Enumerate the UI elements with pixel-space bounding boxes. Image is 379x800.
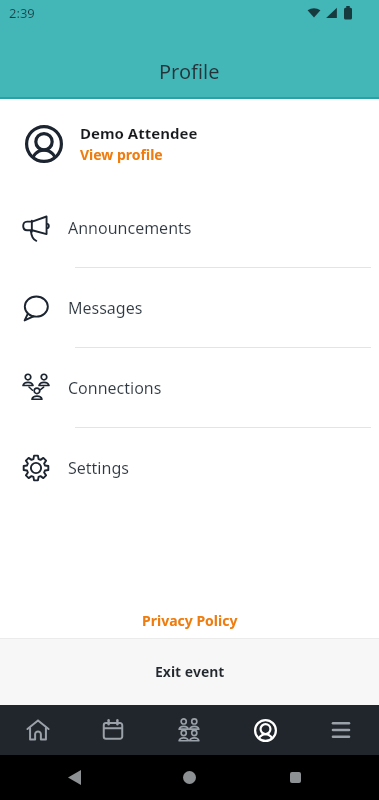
button[interactable]: [0, 705, 75, 755]
button[interactable]: [75, 705, 151, 755]
staticText: Connections: [68, 377, 162, 399]
staticText: 2:39: [9, 4, 35, 22]
staticText: Exit event: [155, 662, 225, 681]
staticText: Announcements: [68, 217, 192, 239]
button[interactable]: Messages: [0, 268, 379, 348]
button[interactable]: [303, 705, 379, 755]
button[interactable]: Connections: [0, 348, 379, 428]
button[interactable]: Privacy Policy: [0, 611, 379, 630]
button[interactable]: Demo Attendee: [0, 99, 379, 188]
staticText: Demo Attendee: [80, 123, 198, 143]
staticText: Privacy Policy: [142, 611, 238, 630]
button[interactable]: Settings: [0, 428, 379, 508]
button[interactable]: [151, 705, 227, 755]
staticText: Profile: [159, 58, 220, 85]
staticText: Settings: [68, 457, 129, 479]
staticText: View profile: [80, 145, 163, 164]
button[interactable]: [227, 705, 303, 755]
button[interactable]: Announcements: [0, 188, 379, 268]
button[interactable]: Exit event: [0, 638, 379, 705]
staticText: Messages: [68, 297, 143, 319]
